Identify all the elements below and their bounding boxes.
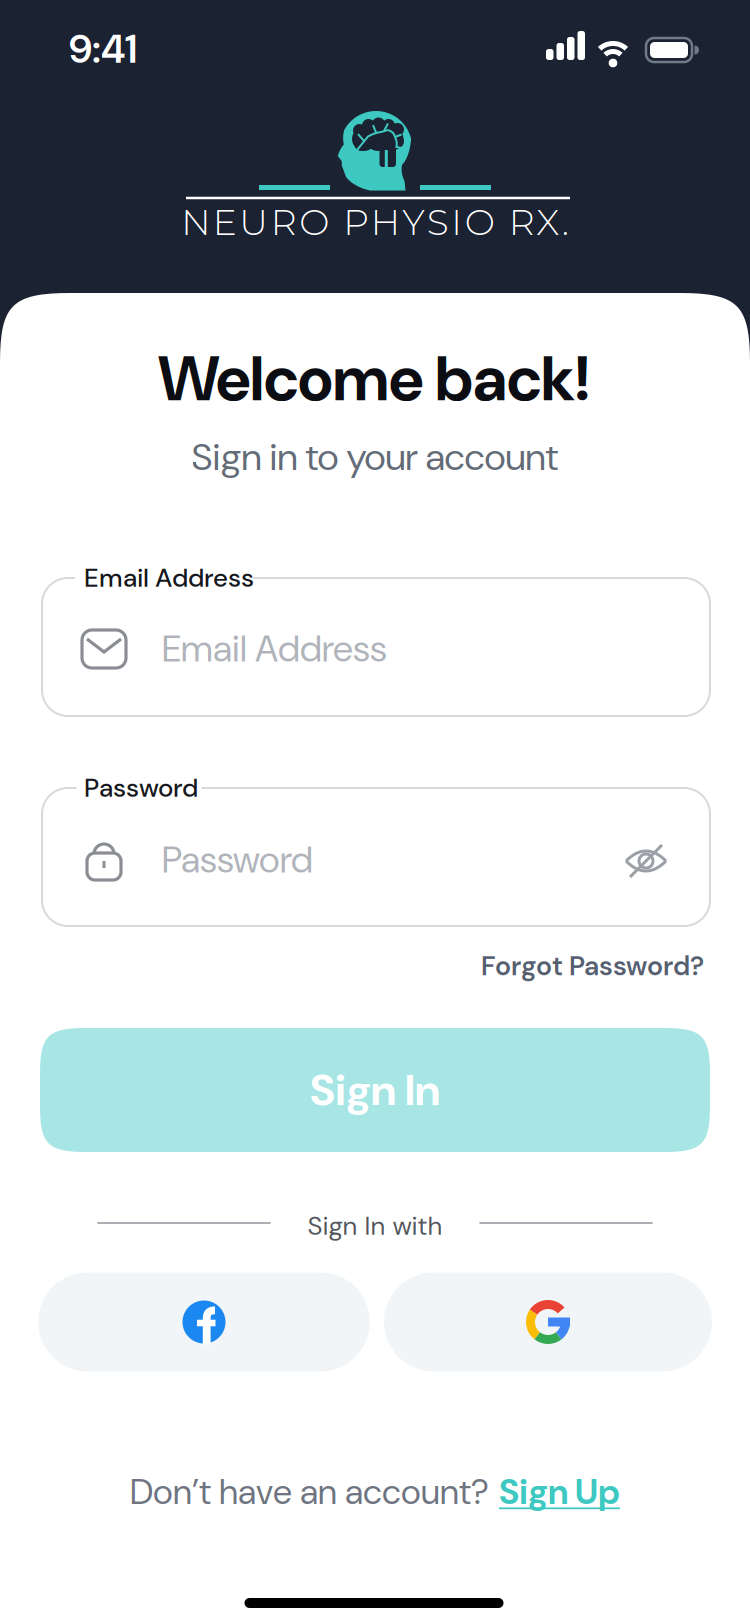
staticText: Don’t have an account? bbox=[130, 1470, 489, 1514]
staticText: Email Address bbox=[162, 625, 387, 672]
staticText: 9:41 bbox=[69, 24, 137, 74]
button[interactable]: Sign In bbox=[40, 1028, 710, 1152]
staticText: Password bbox=[162, 836, 313, 883]
button[interactable]: Sign Up bbox=[499, 1470, 620, 1514]
staticText: Sign Up bbox=[499, 1470, 620, 1514]
button[interactable]: Sign in with Google bbox=[384, 1272, 712, 1371]
button[interactable]: Sign in with Facebook bbox=[38, 1272, 370, 1371]
button[interactable]: Password bbox=[42, 788, 710, 926]
staticText: Password bbox=[84, 771, 198, 804]
staticText: Sign In bbox=[310, 1062, 440, 1118]
button[interactable]: Forgot Password? bbox=[404, 949, 704, 983]
staticText: Email Address bbox=[84, 561, 254, 594]
button[interactable]: Email Address bbox=[42, 578, 710, 716]
staticText: Forgot Password? bbox=[481, 949, 704, 983]
staticText: Welcome back! bbox=[158, 340, 590, 418]
staticText: Sign in to your account bbox=[191, 433, 558, 481]
button[interactable]: Show password bbox=[618, 833, 674, 889]
staticText: NEURO PHYSIO RX. bbox=[181, 200, 569, 244]
staticText: Sign In with bbox=[307, 1209, 442, 1242]
